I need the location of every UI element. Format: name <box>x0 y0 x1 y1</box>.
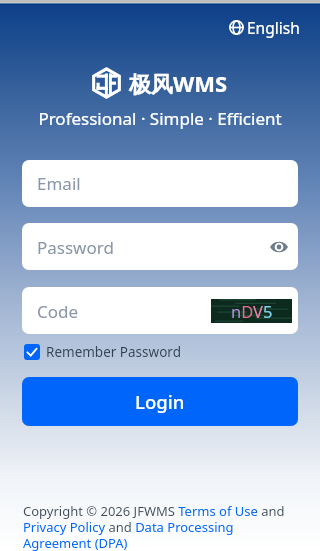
button[interactable]: Code <box>22 287 298 334</box>
staticText: Email <box>37 172 81 195</box>
button[interactable]: Email <box>22 160 298 207</box>
staticText: Professional · Simple · Efficient <box>0 107 320 130</box>
button[interactable]: Remember Password <box>22 341 181 363</box>
staticText: Password <box>37 236 266 259</box>
button[interactable]: Login <box>22 377 298 426</box>
staticText: nDV5 <box>231 300 273 322</box>
staticText: 极风WMS <box>129 68 228 98</box>
button[interactable]: Show password <box>266 234 292 260</box>
button[interactable]: Password <box>22 223 298 270</box>
staticText: English <box>247 17 300 38</box>
staticText: Remember Password <box>46 343 181 361</box>
button[interactable]: Refresh captcha <box>211 299 292 323</box>
staticText: Code <box>37 300 211 323</box>
button[interactable]: English <box>227 15 302 40</box>
staticText: Copyright © 2026 JFWMS Terms of Use and … <box>23 502 297 551</box>
staticText: Login <box>135 389 185 414</box>
